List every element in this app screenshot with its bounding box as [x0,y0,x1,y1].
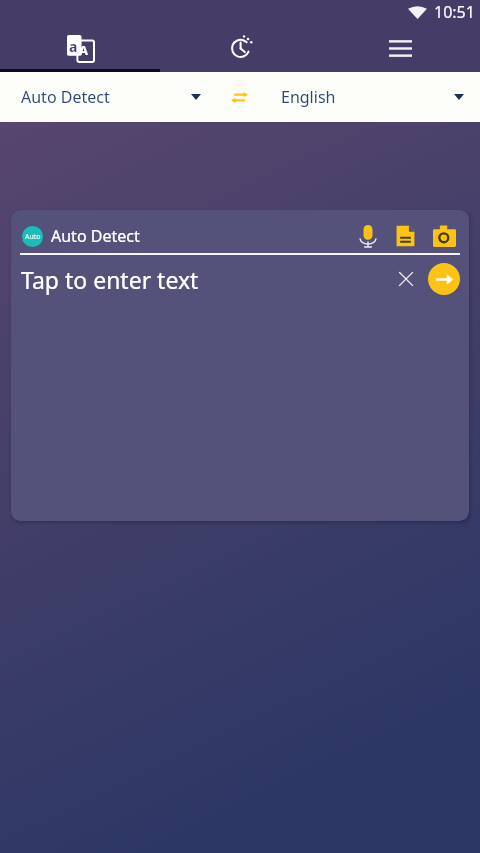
staticText: Tap to enter text [21,264,199,295]
button[interactable]: English [260,72,480,122]
button[interactable]: Translate [0,24,160,72]
button[interactable]: Clear text [389,262,423,296]
staticText: English [281,86,336,108]
staticText: Auto Detect [51,225,140,247]
button[interactable]: Voice input [351,219,385,253]
staticText: a [69,37,78,56]
staticText: Auto [25,232,41,242]
button[interactable]: Camera [427,219,461,253]
staticText: A [79,41,88,59]
button[interactable]: Translate [428,263,460,295]
button[interactable]: Translate document [388,219,422,253]
button[interactable]: History [160,24,320,72]
button[interactable]: Auto Detect [0,72,218,122]
staticText: Auto Detect [21,86,110,108]
button[interactable]: Swap languages [218,72,260,122]
button[interactable]: Tap to enter text [21,255,389,303]
staticText: 10:51 [434,1,475,23]
button[interactable]: Menu [320,24,480,72]
